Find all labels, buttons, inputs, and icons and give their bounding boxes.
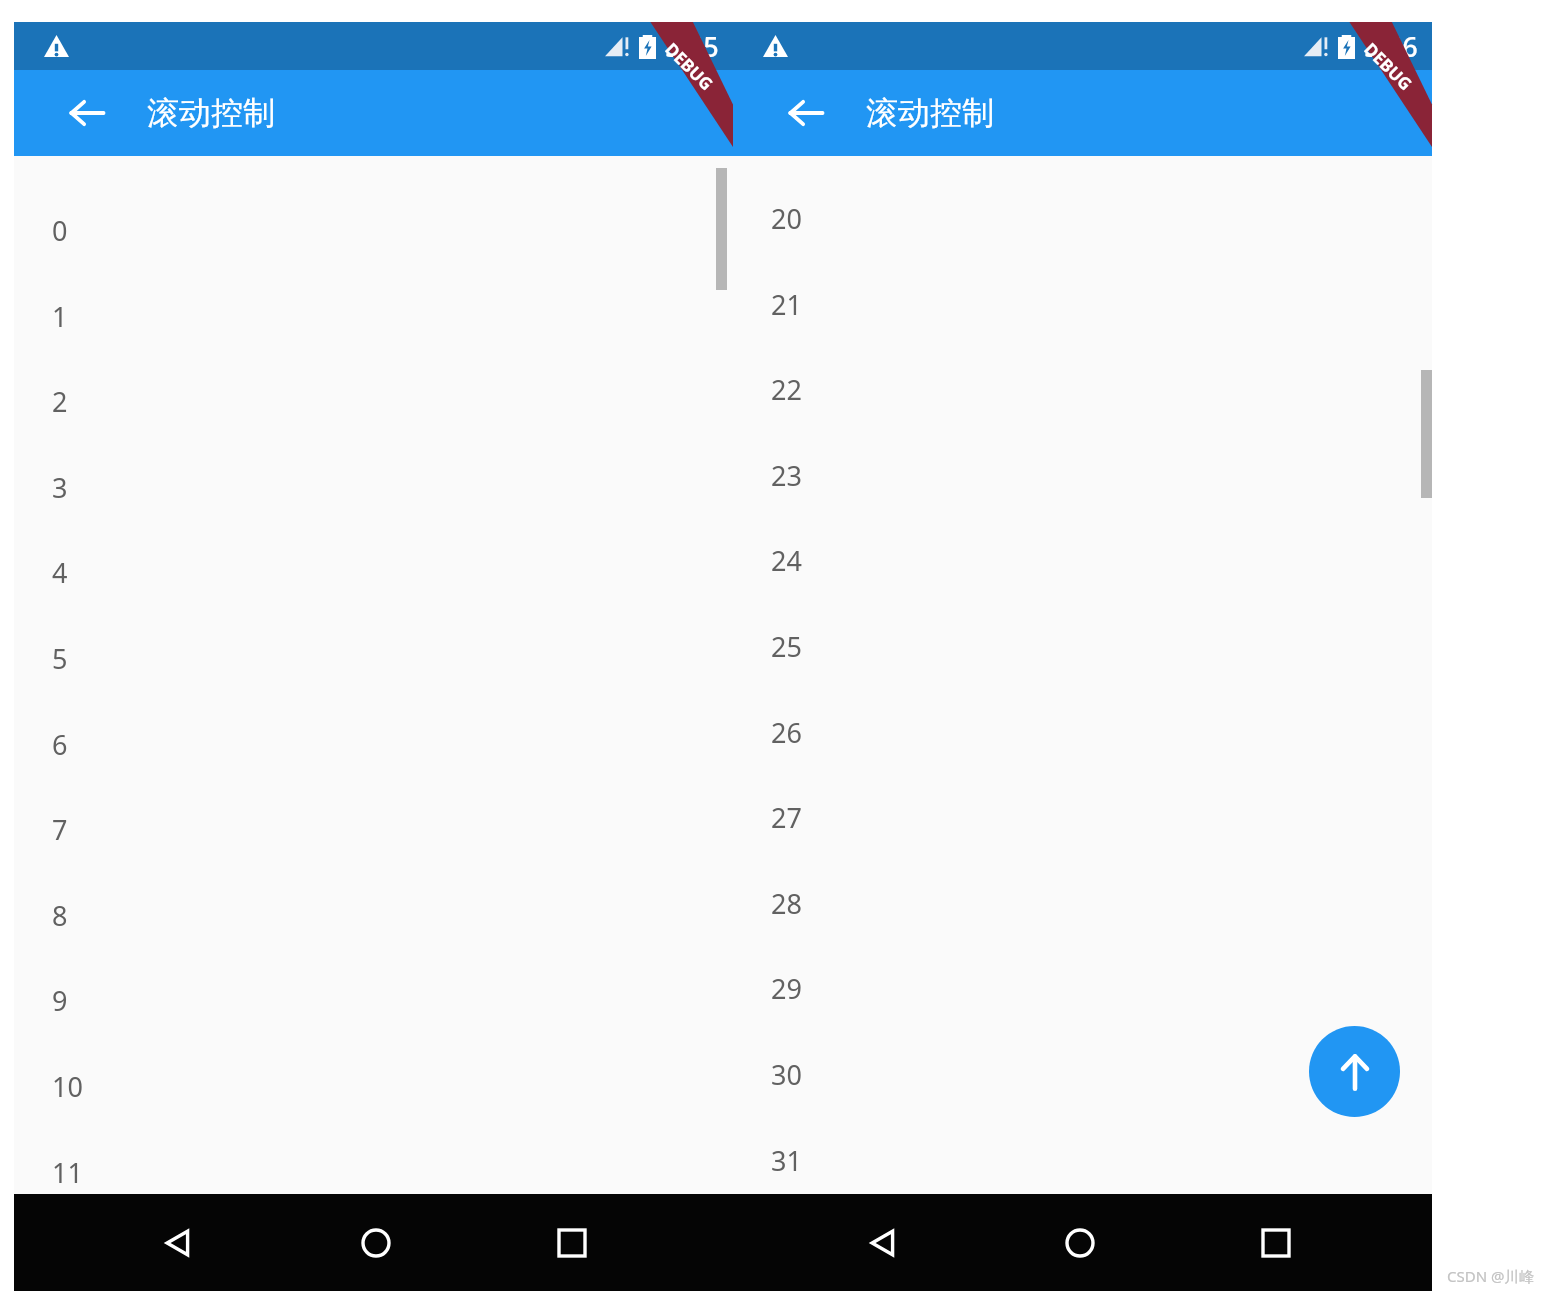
button[interactable]: 22 [733,349,1432,434]
staticText: 3 [52,469,68,506]
button[interactable]: 21 [733,264,1432,349]
staticText: 0 [52,212,68,249]
staticText: 22 [771,371,802,408]
button[interactable]: 6 [14,704,733,789]
staticText: 5:46 [1364,28,1418,65]
staticText: 11 [52,1154,83,1191]
button[interactable]: Scroll to top [1309,1026,1400,1117]
staticText: 6 [52,726,68,763]
staticText: 30 [771,1056,802,1093]
button[interactable]: 2 [14,361,733,446]
staticText: 28 [771,885,802,922]
staticText: 8 [52,897,68,934]
staticText: DEBUG [660,37,718,95]
button[interactable]: Back [148,1194,208,1291]
button[interactable]: Home [346,1194,406,1291]
button[interactable]: 29 [733,948,1432,1033]
button[interactable]: Navigate up [777,84,835,142]
button[interactable]: Recent apps [542,1194,602,1291]
button[interactable]: Home [1050,1194,1110,1291]
staticText: 21 [771,286,802,323]
button[interactable]: 20 [733,178,1432,263]
button[interactable]: 31 [733,1120,1432,1205]
button[interactable]: 26 [733,692,1432,777]
staticText: 20 [771,200,802,237]
staticText: 2 [52,383,68,420]
staticText: CSDN @川峰 [1447,1266,1535,1286]
button[interactable]: 28 [733,863,1432,948]
button[interactable]: Recent apps [1246,1194,1306,1291]
button[interactable]: Navigate up [58,84,116,142]
staticText: 滚动控制 [866,93,994,133]
staticText: 31 [771,1142,802,1179]
staticText: 26 [771,714,802,751]
staticText: 25 [771,628,802,665]
button[interactable]: 4 [14,532,733,617]
staticText: 23 [771,457,802,494]
staticText: 24 [771,542,802,579]
staticText: 10 [52,1068,83,1105]
staticText: 1 [52,298,68,335]
button[interactable]: 7 [14,789,733,874]
staticText: 5:45 [665,28,719,65]
button[interactable]: 24 [733,520,1432,605]
button[interactable]: 30 [733,1034,1432,1119]
button[interactable]: 27 [733,777,1432,862]
staticText: 7 [52,811,68,848]
button[interactable]: Back [853,1194,913,1291]
staticText: 滚动控制 [147,93,275,133]
button[interactable]: 3 [14,447,733,532]
staticText: 9 [52,982,68,1019]
button[interactable]: 32 [733,1205,1432,1290]
staticText: 4 [52,554,68,591]
button[interactable]: 25 [733,606,1432,691]
button[interactable]: 0 [14,190,733,275]
button[interactable]: 11 [14,1132,733,1217]
button[interactable]: 8 [14,875,733,960]
button[interactable]: 10 [14,1046,733,1131]
button[interactable]: 9 [14,960,733,1045]
button[interactable]: 5 [14,618,733,703]
staticText: 5 [52,640,68,677]
button[interactable]: 1 [14,276,733,361]
staticText: DEBUG [1359,37,1417,95]
staticText: 27 [771,799,802,836]
button[interactable]: 12 [14,1217,733,1291]
staticText: 29 [771,970,802,1007]
button[interactable]: 23 [733,435,1432,520]
